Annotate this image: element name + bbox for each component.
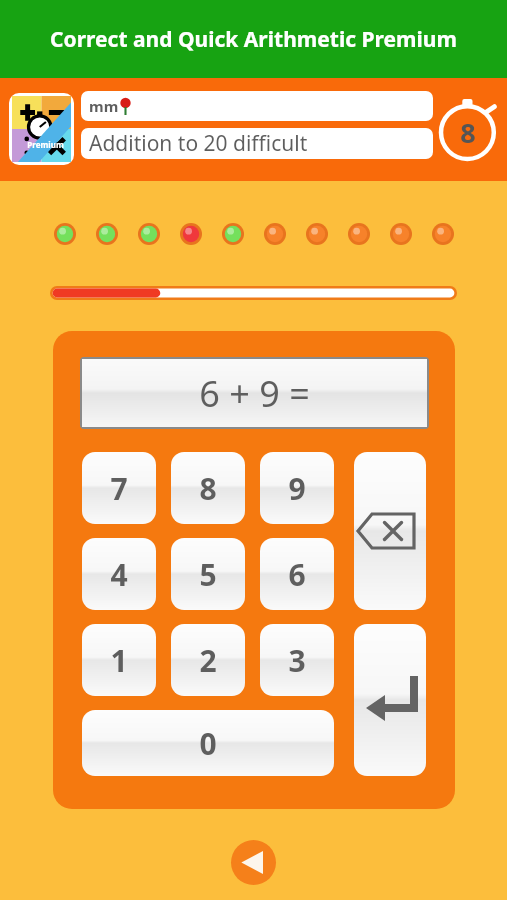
staticText: 7 bbox=[110, 468, 128, 509]
button[interactable]: 7 bbox=[82, 452, 156, 524]
button[interactable]: mm bbox=[81, 91, 433, 121]
staticText: 6 + 9 = bbox=[199, 369, 310, 418]
staticText: 8 bbox=[199, 468, 217, 509]
staticText: 9 bbox=[288, 468, 306, 509]
button[interactable]: Backspace bbox=[354, 452, 426, 610]
button[interactable]: Timer bbox=[441, 93, 501, 165]
button[interactable]: 9 bbox=[260, 452, 334, 524]
button[interactable]: 3 bbox=[260, 624, 334, 696]
staticText: 0 bbox=[199, 723, 217, 764]
staticText: Premium bbox=[27, 139, 64, 150]
staticText: Correct and Quick Arithmetic Premium bbox=[6, 25, 501, 54]
button[interactable]: 0 bbox=[82, 710, 334, 776]
button[interactable]: App icon bbox=[9, 93, 74, 165]
staticText: 4 bbox=[110, 554, 128, 595]
staticText: Addition to 20 difficult bbox=[89, 129, 308, 158]
button[interactable]: 6 + 9 = bbox=[82, 359, 427, 427]
button[interactable]: 5 bbox=[171, 538, 245, 610]
staticText: 8 bbox=[460, 114, 476, 151]
button[interactable]: Enter bbox=[354, 624, 426, 776]
staticText: 3 bbox=[288, 640, 306, 681]
button[interactable]: 1 bbox=[82, 624, 156, 696]
button[interactable]: Back bbox=[231, 840, 276, 885]
button[interactable]: 2 bbox=[171, 624, 245, 696]
staticText: 1 bbox=[110, 640, 128, 681]
staticText: mm bbox=[89, 96, 119, 116]
staticText: 6 bbox=[288, 554, 306, 595]
button[interactable]: 4 bbox=[82, 538, 156, 610]
staticText: 2 bbox=[199, 640, 217, 681]
button[interactable]: Addition to 20 difficult bbox=[81, 128, 433, 159]
staticText: 5 bbox=[199, 554, 217, 595]
button[interactable]: 6 bbox=[260, 538, 334, 610]
button[interactable]: 8 bbox=[171, 452, 245, 524]
